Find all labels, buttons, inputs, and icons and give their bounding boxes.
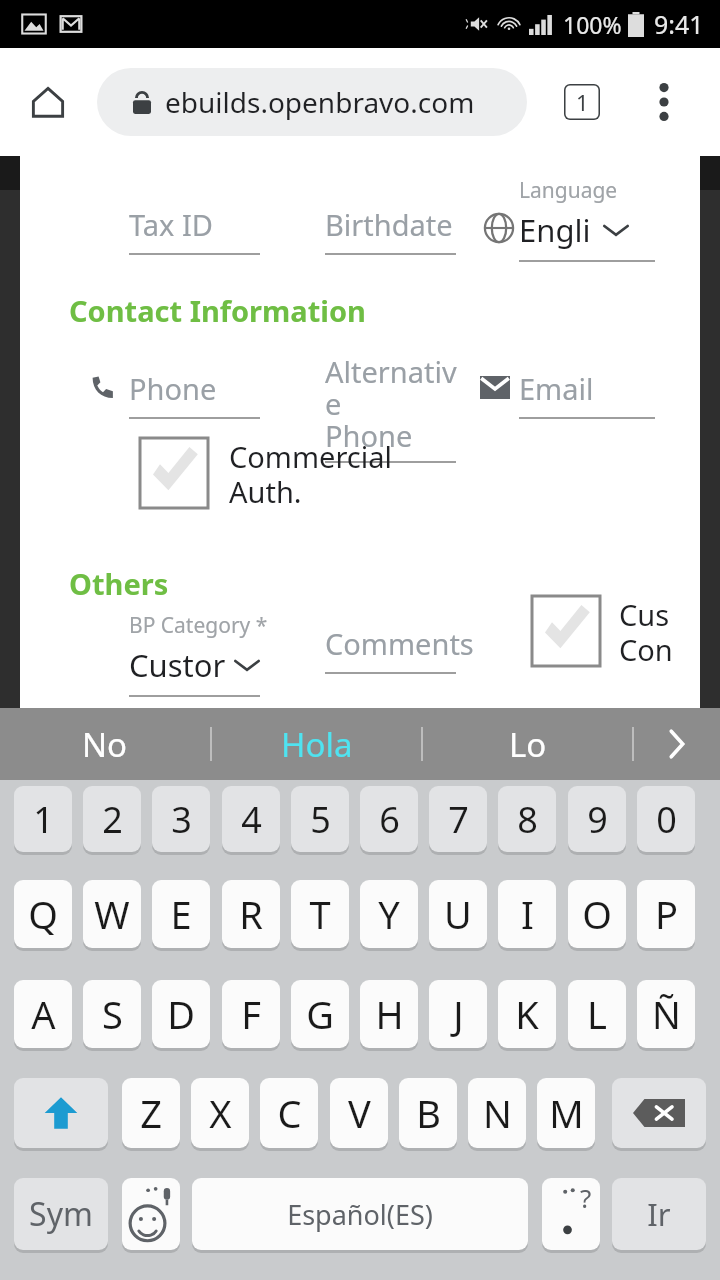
staticText: Comments bbox=[325, 624, 474, 663]
button[interactable]: X bbox=[191, 1078, 249, 1148]
button[interactable]: W bbox=[83, 880, 141, 948]
button[interactable]: Hola bbox=[212, 708, 421, 780]
button[interactable]: Q bbox=[14, 880, 72, 948]
button[interactable]: Lo bbox=[423, 708, 632, 780]
button[interactable]: Sym bbox=[14, 1178, 108, 1250]
staticText: S bbox=[102, 988, 123, 1040]
button[interactable]: Contact Information bbox=[69, 291, 366, 330]
button[interactable]: 0 bbox=[637, 786, 695, 852]
staticText: Ir bbox=[647, 1193, 671, 1235]
button[interactable]: Y bbox=[360, 880, 418, 948]
button[interactable]: P bbox=[637, 880, 695, 948]
button[interactable]: 3 bbox=[152, 786, 210, 852]
staticText: Alternative Phone bbox=[325, 352, 460, 456]
button[interactable]: I bbox=[498, 880, 556, 948]
button[interactable]: 5 bbox=[291, 786, 349, 852]
button[interactable]: More options bbox=[630, 68, 698, 136]
button[interactable]: 6 bbox=[360, 786, 418, 852]
staticText: 3 bbox=[171, 795, 192, 844]
button[interactable]: Others bbox=[69, 564, 169, 603]
button[interactable]: 1 bbox=[14, 786, 72, 852]
button[interactable]: B bbox=[399, 1078, 457, 1148]
button[interactable]: Alternative Phone bbox=[325, 352, 460, 463]
button[interactable]: ebuilds.openbravo.com bbox=[97, 68, 527, 136]
staticText: ebuilds.openbravo.com bbox=[165, 83, 475, 121]
staticText: 0 bbox=[656, 795, 677, 844]
button[interactable]: Birthdate bbox=[325, 205, 456, 255]
button[interactable]: H bbox=[360, 980, 418, 1048]
button[interactable]: More suggestions bbox=[634, 708, 720, 780]
button[interactable]: Phone bbox=[129, 369, 260, 419]
button[interactable]: N bbox=[468, 1078, 526, 1148]
staticText: 6 bbox=[379, 795, 400, 844]
staticText: Ñ bbox=[652, 988, 681, 1040]
staticText: 100% bbox=[563, 9, 622, 40]
staticText: B bbox=[416, 1087, 441, 1139]
button[interactable]: Z bbox=[122, 1078, 180, 1148]
staticText: Hola bbox=[281, 722, 353, 767]
staticText: Birthdate bbox=[325, 205, 453, 244]
button[interactable]: Language bbox=[519, 176, 679, 262]
button[interactable]: Ir bbox=[612, 1178, 706, 1250]
staticText: Español(ES) bbox=[287, 1196, 433, 1233]
button[interactable]: E bbox=[152, 880, 210, 948]
staticText: Language bbox=[519, 176, 618, 205]
button[interactable]: M bbox=[537, 1078, 595, 1148]
button[interactable]: 8 bbox=[498, 786, 556, 852]
button[interactable]: Language bbox=[475, 204, 523, 252]
button[interactable]: Comments bbox=[325, 624, 474, 674]
staticText: H bbox=[375, 988, 404, 1040]
staticText: N bbox=[483, 1087, 512, 1139]
button[interactable]: O bbox=[568, 880, 626, 948]
button[interactable]: R bbox=[222, 880, 280, 948]
button[interactable]: Tabs bbox=[548, 68, 616, 136]
staticText: G bbox=[306, 988, 334, 1040]
button[interactable]: Commercial Auth. bbox=[139, 437, 393, 512]
button[interactable]: 2 bbox=[83, 786, 141, 852]
button[interactable]: BP Category * bbox=[129, 611, 268, 697]
button[interactable]: T bbox=[291, 880, 349, 948]
button[interactable]: Home bbox=[14, 68, 82, 136]
button[interactable]: J bbox=[429, 980, 487, 1048]
staticText: E bbox=[170, 888, 192, 940]
staticText: No bbox=[82, 722, 128, 767]
staticText: J bbox=[453, 988, 464, 1040]
staticText: BP Category * bbox=[129, 611, 268, 640]
button[interactable]: Tax ID bbox=[129, 205, 260, 255]
button[interactable]: 7 bbox=[429, 786, 487, 852]
staticText: L bbox=[587, 988, 607, 1040]
button[interactable]: Backspace bbox=[612, 1078, 706, 1148]
button[interactable]: Email bbox=[519, 369, 655, 419]
button[interactable]: Shift bbox=[14, 1078, 108, 1148]
button[interactable]: 4 bbox=[222, 786, 280, 852]
staticText: 4 bbox=[241, 795, 262, 844]
button[interactable]: D bbox=[152, 980, 210, 1048]
button[interactable]: V bbox=[330, 1078, 388, 1148]
button[interactable]: Emoji and voice input bbox=[122, 1178, 180, 1250]
button[interactable]: No bbox=[0, 708, 210, 780]
button[interactable]: K bbox=[498, 980, 556, 1048]
staticText: W bbox=[94, 888, 130, 940]
staticText: Z bbox=[140, 1087, 162, 1139]
button[interactable]: F bbox=[222, 980, 280, 1048]
button[interactable]: A bbox=[14, 980, 72, 1048]
button[interactable]: Español(ES) bbox=[192, 1178, 528, 1250]
button[interactable]: 9 bbox=[568, 786, 626, 852]
button[interactable]: Period bbox=[542, 1178, 600, 1250]
button[interactable]: Ñ bbox=[637, 980, 695, 1048]
staticText: 2 bbox=[102, 795, 123, 844]
staticText: Lo bbox=[509, 722, 547, 767]
staticText: Phone bbox=[129, 369, 217, 408]
button[interactable]: Cus Con bbox=[531, 595, 673, 670]
staticText: Tax ID bbox=[129, 205, 213, 244]
button[interactable]: S bbox=[83, 980, 141, 1048]
staticText: Commercial Auth. bbox=[229, 437, 393, 512]
staticText: D bbox=[167, 988, 195, 1040]
staticText: 8 bbox=[517, 795, 538, 844]
button[interactable]: C bbox=[260, 1078, 318, 1148]
staticText: Contact Information bbox=[69, 291, 366, 330]
button[interactable]: L bbox=[568, 980, 626, 1048]
button[interactable]: G bbox=[291, 980, 349, 1048]
button[interactable]: U bbox=[429, 880, 487, 948]
staticText: English bbox=[519, 209, 599, 251]
